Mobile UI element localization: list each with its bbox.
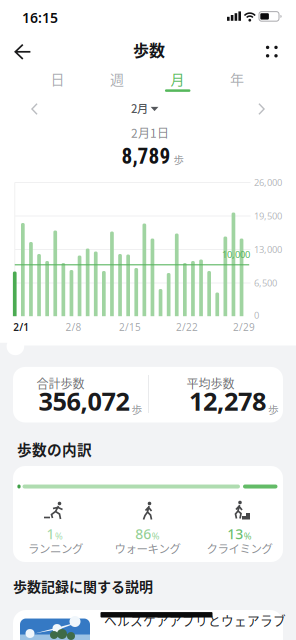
staticText: 2/29 xyxy=(233,320,255,334)
button[interactable]: Select month xyxy=(130,100,160,116)
staticText: 19,500 xyxy=(254,210,282,222)
staticText: 歩 xyxy=(131,401,142,417)
staticText: 356,072 xyxy=(38,384,129,418)
button[interactable]: 週 xyxy=(94,66,140,92)
staticText: 86 xyxy=(135,524,151,543)
staticText: 2/15 xyxy=(119,320,141,334)
button[interactable]: 日 xyxy=(34,66,80,92)
staticText: ランニング xyxy=(28,540,83,557)
staticText: 歩数 xyxy=(133,38,165,61)
staticText: 歩数の内訳 xyxy=(17,438,92,460)
staticText: 歩 xyxy=(173,152,183,167)
staticText: 歩 xyxy=(268,401,279,417)
staticText: 日 xyxy=(50,68,64,89)
staticText: 月 xyxy=(170,68,184,89)
button[interactable]: More xyxy=(265,44,279,59)
button[interactable]: 月 xyxy=(154,66,200,92)
staticText: 年 xyxy=(230,68,244,89)
staticText: 10,000 xyxy=(222,248,250,261)
staticText: クライミング xyxy=(206,540,272,557)
staticText: 2/8 xyxy=(65,320,81,334)
staticText: ウォーキング xyxy=(114,540,180,557)
staticText: 2月 xyxy=(131,100,148,116)
button[interactable]: Previous month xyxy=(31,102,39,116)
button[interactable]: About step recording xyxy=(13,610,283,640)
staticText: 12,278 xyxy=(189,384,266,418)
staticText: 16:15 xyxy=(22,8,58,27)
button[interactable]: Next month xyxy=(257,102,265,116)
staticText: % xyxy=(55,530,63,542)
staticText: 8,789 xyxy=(121,144,170,169)
staticText: % xyxy=(152,530,160,542)
staticText: 2/22 xyxy=(176,320,198,334)
staticText: 1 xyxy=(46,524,54,543)
button[interactable]: 年 xyxy=(214,66,260,92)
staticText: 歩数記録に関する説明 xyxy=(13,576,153,596)
staticText: 0 xyxy=(254,309,259,321)
staticText: 合計歩数 xyxy=(36,375,84,392)
staticText: 平均歩数 xyxy=(186,375,234,392)
staticText: 13 xyxy=(227,524,243,543)
button[interactable]: Back xyxy=(13,42,33,62)
staticText: 13,000 xyxy=(254,243,282,256)
staticText: % xyxy=(244,530,252,542)
staticText: 26,000 xyxy=(254,176,282,189)
staticText: 2月1日 xyxy=(131,124,169,141)
staticText: ヘルスケアアプリとウェアラブ xyxy=(104,611,286,629)
staticText: 6,500 xyxy=(254,277,277,289)
staticText: 週 xyxy=(110,68,124,89)
staticText: 2/1 xyxy=(13,320,29,334)
